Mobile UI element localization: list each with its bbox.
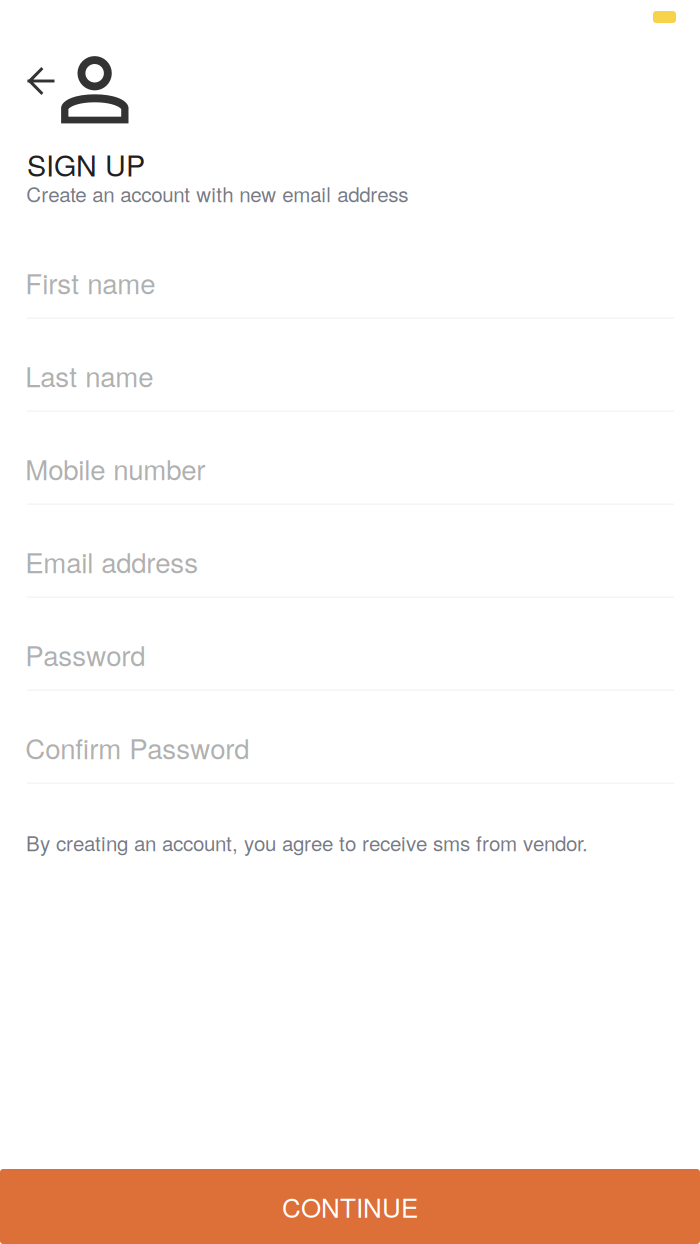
staticText: By creating an account, you agree to rec…: [26, 828, 588, 857]
button[interactable]: First name: [27, 226, 674, 319]
staticText: Confirm Password: [25, 727, 249, 767]
button[interactable]: Mobile number: [27, 412, 674, 505]
button[interactable]: Password: [27, 598, 674, 691]
button[interactable]: Last name: [27, 319, 674, 412]
staticText: Create an account with new email address: [26, 179, 408, 208]
staticText: Last name: [25, 355, 153, 395]
staticText: Email address: [25, 541, 198, 581]
button[interactable]: Confirm Password: [27, 691, 674, 784]
button[interactable]: CONTINUE: [0, 1169, 700, 1244]
staticText: SIGN UP: [27, 143, 145, 185]
button[interactable]: Email address: [27, 505, 674, 598]
button[interactable]: Back: [27, 68, 54, 94]
staticText: First name: [25, 262, 155, 302]
staticText: CONTINUE: [282, 1188, 418, 1225]
staticText: Mobile number: [25, 448, 205, 488]
staticText: Password: [25, 634, 145, 674]
